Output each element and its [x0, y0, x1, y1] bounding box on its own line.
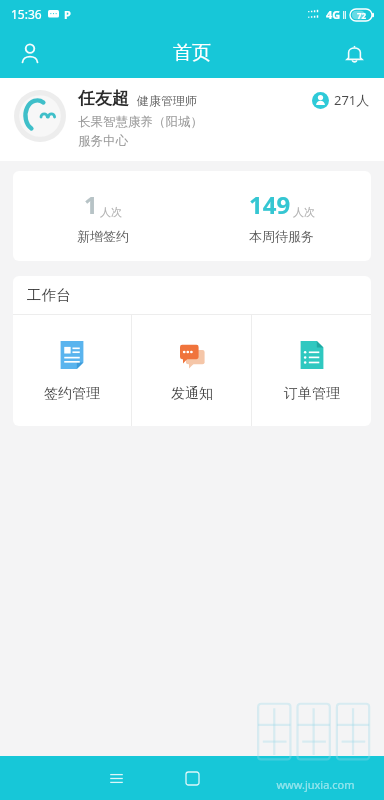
staticText: 人次 — [100, 205, 122, 219]
staticText: www.juxia.com — [276, 777, 355, 792]
button[interactable]: 149 — [192, 171, 371, 261]
staticText: 任友超 — [78, 88, 129, 109]
button[interactable]: 任友超 — [0, 78, 384, 161]
button[interactable]: 271人 — [312, 91, 370, 109]
button[interactable]: 订单管理 — [252, 315, 371, 426]
staticText: 首页 — [173, 41, 211, 65]
staticText: P — [64, 7, 71, 22]
staticText: 149 — [249, 188, 291, 221]
staticText: 72 — [357, 10, 367, 21]
staticText: 271人 — [334, 91, 370, 109]
staticText: 健康管理师 — [137, 93, 197, 108]
staticText: 1 — [84, 188, 98, 221]
button[interactable]: Recent apps — [94, 756, 138, 800]
staticText: 4G — [326, 7, 341, 22]
staticText: 本周待服务 — [249, 228, 314, 244]
staticText: 长果智慧康养（阳城） — [78, 114, 203, 130]
button[interactable]: 发通知 — [132, 315, 251, 426]
staticText: 服务中心 — [78, 133, 128, 149]
button[interactable]: 1 — [13, 171, 192, 261]
button[interactable]: Profile — [8, 31, 52, 75]
staticText: 签约管理 — [44, 385, 100, 403]
staticText: 订单管理 — [284, 385, 340, 403]
staticText: 发通知 — [171, 385, 213, 403]
staticText: 15:36 — [11, 6, 42, 22]
staticText: 人次 — [293, 205, 315, 219]
staticText: 新增签约 — [77, 228, 129, 244]
button[interactable]: 签约管理 — [13, 315, 131, 426]
button[interactable]: Notifications — [332, 31, 376, 75]
button[interactable]: Home — [170, 756, 214, 800]
staticText: 工作台 — [27, 286, 71, 304]
